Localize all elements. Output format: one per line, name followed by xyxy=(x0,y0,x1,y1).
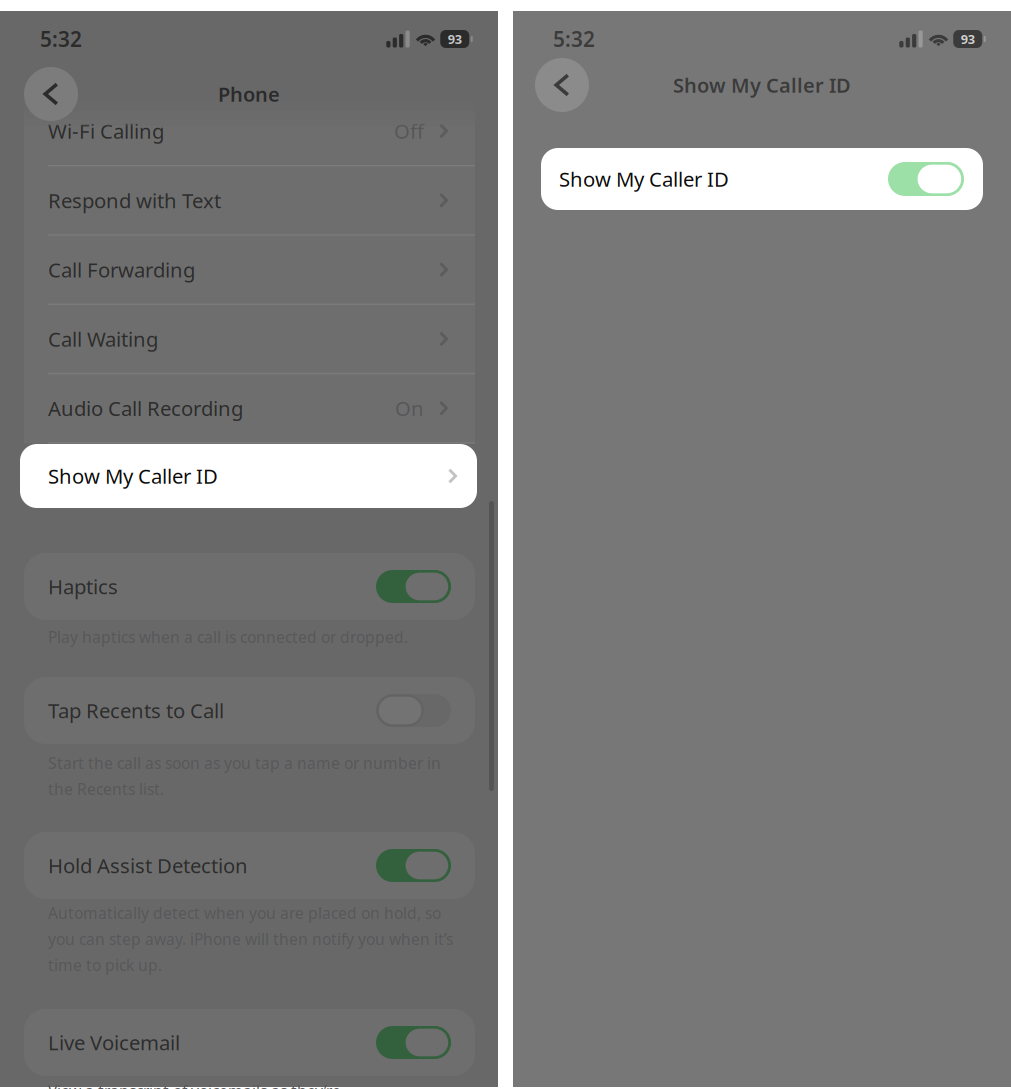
button[interactable]: Call Waiting xyxy=(24,305,475,373)
staticText: you can step away. iPhone will then noti… xyxy=(48,928,453,950)
button[interactable]: On xyxy=(376,570,451,603)
staticText: Tap Recents to Call xyxy=(48,697,224,724)
button[interactable]: Tap Recents to Call xyxy=(24,677,475,744)
button[interactable]: Audio Call Recording xyxy=(24,374,475,442)
staticText: Live Voicemail xyxy=(48,1029,180,1056)
button[interactable]: Show My Caller ID xyxy=(541,148,983,210)
staticText: the Recents list. xyxy=(48,778,164,800)
staticText: Start the call as soon as you tap a name… xyxy=(48,752,441,774)
button[interactable]: Live Voicemail xyxy=(24,1009,475,1076)
button[interactable]: Show My Caller ID xyxy=(20,444,477,508)
staticText: time to pick up. xyxy=(48,954,162,976)
staticText: Respond with Text xyxy=(48,186,221,214)
staticText: Phone xyxy=(218,80,280,108)
staticText: Play haptics when a call is connected or… xyxy=(48,626,408,648)
button[interactable]: Hold Assist Detection xyxy=(24,832,475,899)
staticText: Off xyxy=(394,117,424,145)
staticText: Show My Caller ID xyxy=(559,165,729,193)
staticText: 5:32 xyxy=(40,25,82,53)
button[interactable]: On xyxy=(376,1026,451,1059)
staticText: Hold Assist Detection xyxy=(48,852,248,879)
button[interactable]: Call Forwarding xyxy=(24,236,475,304)
button[interactable]: Wi-Fi Calling xyxy=(24,97,475,165)
staticText: Automatically detect when you are placed… xyxy=(48,902,441,924)
staticText: On xyxy=(395,394,424,422)
staticText: Wi-Fi Calling xyxy=(48,117,164,145)
staticText: 93 xyxy=(448,30,462,48)
staticText: Audio Call Recording xyxy=(48,394,243,422)
button[interactable]: Show My Caller ID xyxy=(888,162,964,196)
staticText: 93 xyxy=(961,30,975,48)
button[interactable]: Respond with Text xyxy=(24,166,475,234)
button[interactable]: Haptics xyxy=(24,553,475,620)
staticText: View a transcript of voicemails as they’… xyxy=(48,1080,341,1089)
staticText: Show My Caller ID xyxy=(48,462,218,490)
staticText: Call Forwarding xyxy=(48,256,195,283)
staticText: 5:32 xyxy=(553,25,595,53)
staticText: Haptics xyxy=(48,573,118,600)
staticText: Call Waiting xyxy=(48,325,158,353)
button[interactable]: On xyxy=(376,849,451,882)
button[interactable]: Back xyxy=(535,58,589,112)
staticText: Show My Caller ID xyxy=(673,71,851,99)
button[interactable]: Off xyxy=(376,694,451,727)
button[interactable]: Back xyxy=(24,67,78,121)
